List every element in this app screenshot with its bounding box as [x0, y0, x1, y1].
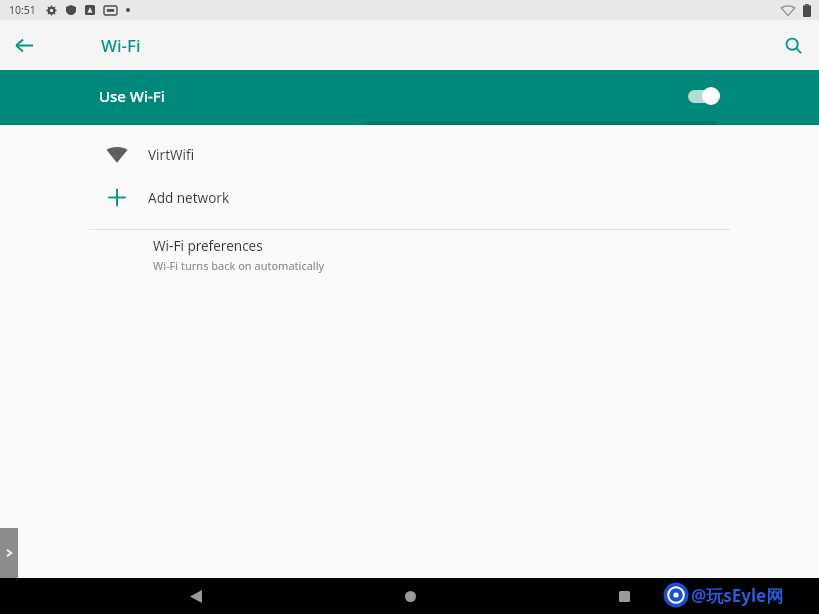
staticText: @玩sEyle网: [691, 584, 784, 607]
staticText: Wi-Fi preferences: [153, 237, 263, 255]
staticText: VirtWifi: [148, 146, 195, 164]
button[interactable]: Back: [177, 578, 215, 614]
button[interactable]: Open side panel: [0, 528, 18, 578]
button[interactable]: Wi-Fi preferences: [0, 230, 819, 280]
button[interactable]: Search: [776, 28, 810, 62]
staticText: Use Wi-Fi: [99, 86, 165, 106]
staticText: Wi-Fi: [101, 34, 141, 57]
staticText: Add network: [148, 189, 230, 207]
button[interactable]: Recent apps: [605, 578, 643, 614]
button[interactable]: Use Wi-Fi: [0, 70, 819, 125]
staticText: 10:51: [9, 3, 36, 17]
button[interactable]: Back: [8, 29, 40, 61]
button[interactable]: Add network: [0, 176, 819, 219]
staticText: Wi-Fi turns back on automatically: [153, 258, 325, 273]
button[interactable]: Home: [391, 578, 429, 614]
button[interactable]: VirtWifi: [0, 133, 819, 176]
